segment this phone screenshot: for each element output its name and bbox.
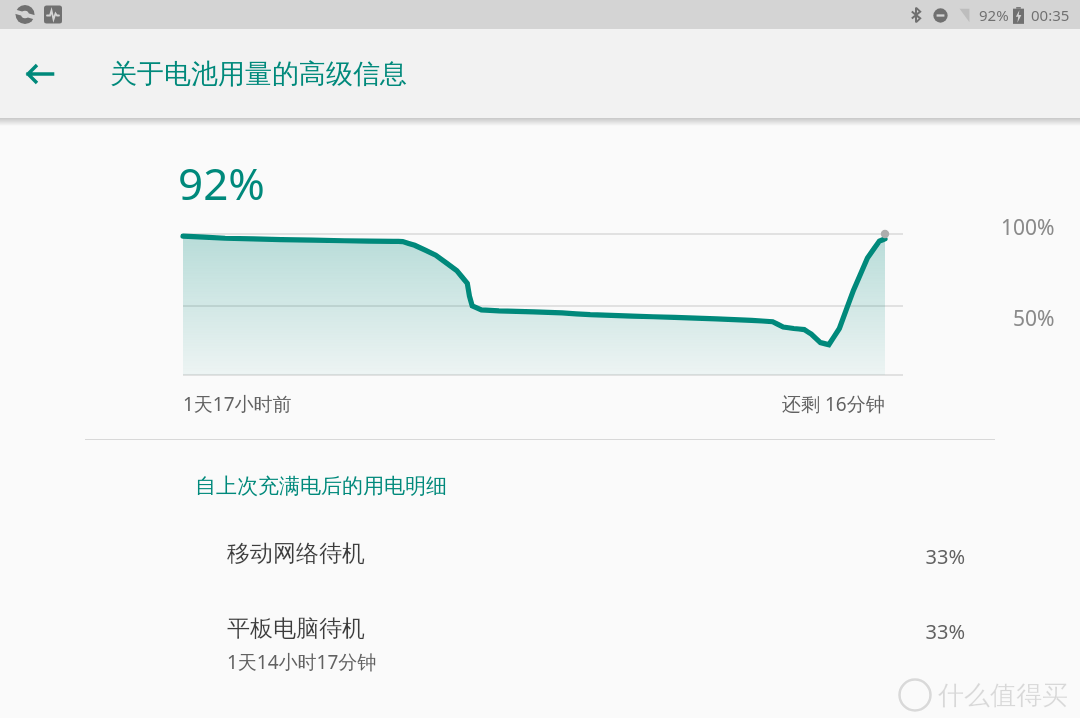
staticText: 移动网络待机 xyxy=(227,539,365,568)
staticText: 92% xyxy=(178,153,265,213)
button[interactable]: 自上次充满电后的用电明细 xyxy=(195,473,447,499)
button[interactable]: 平板电脑待机 xyxy=(0,614,1080,675)
staticText: 1天17小时前 xyxy=(183,391,292,417)
staticText: 还剩 16分钟 xyxy=(782,391,885,417)
staticText: 33% xyxy=(925,618,965,645)
staticText: 33% xyxy=(925,543,965,570)
button[interactable]: Back xyxy=(10,44,70,104)
staticText: 什么值得买 xyxy=(938,679,1068,712)
button[interactable]: 移动网络待机 xyxy=(0,539,1080,568)
staticText: 1天14小时17分钟 xyxy=(227,649,377,675)
staticText: 50% xyxy=(1013,304,1055,333)
staticText: 100% xyxy=(1001,213,1055,242)
staticText: 关于电池用量的高级信息 xyxy=(110,57,407,91)
staticText: 平板电脑待机 xyxy=(227,614,365,643)
staticText: 00:35 xyxy=(1031,5,1070,25)
staticText: 92% xyxy=(979,5,1009,25)
